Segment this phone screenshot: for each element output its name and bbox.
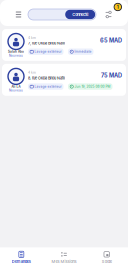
staticText: Demandes <box>12 259 31 264</box>
staticText: 4 km <box>28 71 36 75</box>
staticText: Lavage extérieur <box>34 50 61 54</box>
button[interactable]: Ali LA <box>2 64 126 96</box>
staticText: Nouveau <box>9 54 23 57</box>
staticText: Immédiate <box>74 50 91 54</box>
button[interactable]: Filters <box>104 9 113 20</box>
button[interactable]: Connecté <box>28 9 96 20</box>
staticText: Connecté <box>72 12 88 17</box>
staticText: 75 MAD <box>101 72 122 79</box>
button[interactable]: Salah Abo <box>2 29 126 61</box>
staticText: 7, rue Okba Bnou Nafii <box>28 41 65 45</box>
button[interactable]: Menu <box>14 9 23 20</box>
button[interactable]: Solde <box>85 250 128 265</box>
staticText: 8, rue Okba Bnou Nafii <box>28 76 65 80</box>
staticText: Nouveau <box>9 89 23 92</box>
button[interactable]: Mes Missions <box>43 250 85 265</box>
staticText: Lavage extérieur <box>34 85 61 88</box>
staticText: Solde <box>102 259 112 264</box>
staticText: 1 <box>117 4 119 10</box>
staticText: 4 km <box>28 36 36 40</box>
staticText: Mes Missions <box>51 259 76 264</box>
button[interactable]: Demandes <box>0 250 43 265</box>
staticText: Ali LA <box>11 85 20 88</box>
staticText: 65 MAD <box>100 37 122 44</box>
staticText: Jun 19, 2025 08:00 PM <box>74 85 110 88</box>
staticText: Salah Abo <box>8 50 24 53</box>
